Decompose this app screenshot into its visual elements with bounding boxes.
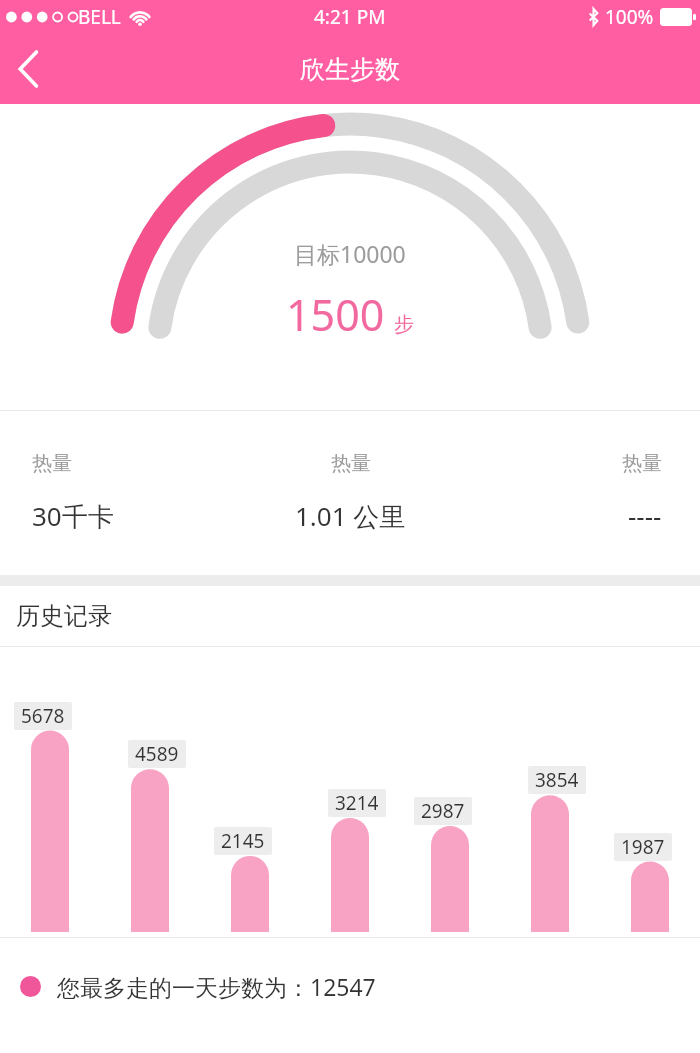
staticText: 5678 <box>21 703 65 729</box>
staticText: 目标10000 <box>294 238 406 269</box>
staticText: 步 <box>394 312 414 337</box>
staticText: 30千卡 <box>32 498 114 534</box>
button[interactable]: 您最多走的一天步数为：12547 <box>0 938 700 1034</box>
staticText: 2145 <box>221 828 265 854</box>
staticText: 欣生步数 <box>300 54 400 85</box>
staticText: 历史记录 <box>16 601 112 631</box>
staticText: 热量 <box>622 451 662 476</box>
staticText: 2987 <box>421 798 465 824</box>
staticText: 100% <box>605 4 654 30</box>
button[interactable]: 热量 <box>467 411 700 575</box>
staticText: 3854 <box>535 767 579 793</box>
staticText: 1987 <box>621 834 665 860</box>
button[interactable]: 热量 <box>0 411 234 575</box>
staticText: 3214 <box>335 790 379 816</box>
staticText: ---- <box>628 498 662 533</box>
staticText: 4589 <box>135 741 179 767</box>
staticText: 您最多走的一天步数为：12547 <box>57 971 376 1002</box>
staticText: BELL <box>78 4 121 30</box>
staticText: 热量 <box>331 451 371 476</box>
button[interactable]: Back <box>0 40 58 98</box>
staticText: 1500 <box>286 285 385 344</box>
staticText: 热量 <box>32 451 72 476</box>
button[interactable]: 热量 <box>234 411 467 575</box>
staticText: 4:21 PM <box>314 4 386 30</box>
staticText: 1.01 公里 <box>295 498 406 534</box>
